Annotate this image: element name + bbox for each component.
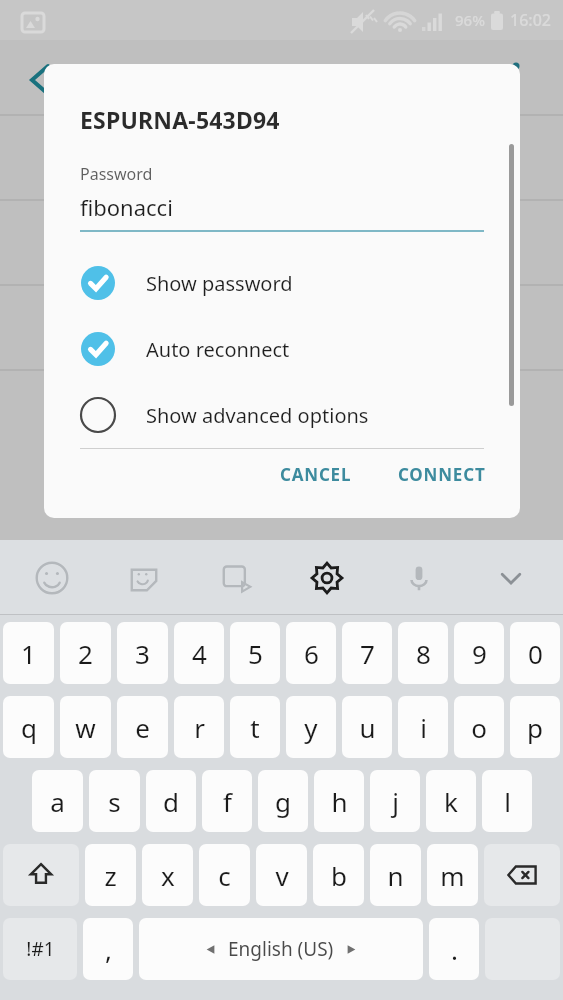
button[interactable]: Settings — [301, 552, 353, 604]
button[interactable]: 2 — [60, 622, 111, 684]
staticText: 3 — [135, 636, 150, 671]
staticText: 6 — [304, 636, 319, 671]
button[interactable]: y — [286, 696, 336, 758]
staticText: 16:02 — [510, 9, 551, 31]
button[interactable]: CONNECT — [388, 453, 496, 496]
staticText: v — [275, 858, 289, 893]
staticText: d — [163, 784, 179, 819]
staticText: 8 — [416, 636, 431, 671]
button[interactable]: 8 — [398, 622, 448, 684]
staticText: b — [331, 858, 347, 893]
button[interactable]: t — [230, 696, 280, 758]
button[interactable]: Auto reconnect — [44, 316, 520, 382]
staticText: English (US) — [228, 936, 334, 962]
button[interactable]: r — [174, 696, 224, 758]
button[interactable]: k — [426, 770, 476, 832]
staticText: c — [218, 858, 231, 893]
staticText: y — [304, 710, 318, 745]
button[interactable]: l — [482, 770, 532, 832]
button[interactable]: a — [32, 770, 83, 832]
button[interactable]: Stickers — [118, 552, 170, 604]
staticText: g — [275, 784, 291, 819]
button[interactable]: English (US) — [139, 918, 423, 980]
staticText: n — [387, 858, 404, 893]
button[interactable]: 9 — [454, 622, 504, 684]
staticText: z — [104, 858, 117, 893]
staticText: 1 — [21, 636, 36, 671]
staticText: a — [50, 784, 65, 819]
staticText: e — [135, 710, 150, 745]
button[interactable]: 3 — [117, 622, 168, 684]
staticText: i — [420, 710, 427, 745]
staticText: 5 — [248, 636, 263, 671]
button[interactable]: c — [199, 844, 250, 906]
staticText: ESPURNA-543D94 — [80, 104, 280, 135]
staticText: q — [21, 710, 37, 745]
staticText: x — [161, 858, 175, 893]
staticText: 4 — [192, 636, 207, 671]
staticText: fibonacci — [80, 192, 173, 222]
button[interactable]: Emoji — [26, 552, 78, 604]
button[interactable]: o — [454, 696, 504, 758]
button[interactable]: i — [398, 696, 448, 758]
staticText: CONNECT — [398, 463, 486, 486]
staticText: s — [108, 784, 121, 819]
staticText: 2 — [78, 636, 93, 671]
button[interactable]: CANCEL — [270, 453, 362, 496]
button[interactable]: q — [3, 696, 54, 758]
button[interactable]: Shift — [3, 844, 79, 906]
button[interactable]: 0 — [510, 622, 560, 684]
button[interactable]: e — [117, 696, 168, 758]
button[interactable]: x — [142, 844, 193, 906]
staticText: u — [359, 710, 376, 745]
staticText: Show password — [146, 270, 293, 297]
staticText: w — [75, 710, 96, 745]
button[interactable]: d — [146, 770, 196, 832]
staticText: 96% — [455, 10, 485, 30]
staticText: t — [250, 710, 260, 745]
staticText: Auto reconnect — [146, 336, 290, 363]
staticText: f — [223, 784, 232, 819]
button[interactable]: Show advanced options — [44, 382, 520, 448]
button[interactable]: 7 — [342, 622, 392, 684]
button[interactable]: !#1 — [3, 918, 77, 980]
button[interactable]: Show password — [44, 250, 520, 316]
button[interactable]: 1 — [3, 622, 54, 684]
staticText: 0 — [528, 636, 543, 671]
button[interactable]: h — [314, 770, 364, 832]
staticText: r — [194, 710, 205, 745]
button[interactable]: f — [202, 770, 252, 832]
staticText: l — [504, 784, 511, 819]
staticText: m — [440, 858, 465, 893]
button[interactable]: m — [427, 844, 478, 906]
staticText: h — [331, 784, 348, 819]
button[interactable]: . — [429, 918, 479, 980]
button[interactable]: Voice input — [393, 552, 445, 604]
button[interactable]: GIF — [210, 552, 262, 604]
button[interactable]: z — [85, 844, 136, 906]
staticText: Password — [80, 163, 153, 185]
button[interactable]: g — [258, 770, 308, 832]
button[interactable]: v — [256, 844, 307, 906]
button[interactable]: j — [370, 770, 420, 832]
button[interactable]: fibonacci — [80, 192, 484, 232]
staticText: !#1 — [26, 936, 55, 962]
button[interactable]: Hide keyboard — [485, 552, 537, 604]
button[interactable]: , — [83, 918, 133, 980]
button[interactable]: 6 — [286, 622, 336, 684]
button[interactable]: Backspace — [484, 844, 560, 906]
button[interactable]: b — [313, 844, 364, 906]
staticText: p — [527, 710, 543, 745]
button[interactable]: 5 — [230, 622, 280, 684]
button[interactable]: w — [60, 696, 111, 758]
button[interactable]: u — [342, 696, 392, 758]
staticText: o — [471, 710, 487, 745]
button[interactable]: s — [89, 770, 140, 832]
staticText: 9 — [472, 636, 487, 671]
staticText: j — [392, 784, 399, 819]
button[interactable]: n — [370, 844, 421, 906]
staticText: k — [444, 784, 458, 819]
button[interactable]: p — [510, 696, 560, 758]
button[interactable]: 4 — [174, 622, 224, 684]
